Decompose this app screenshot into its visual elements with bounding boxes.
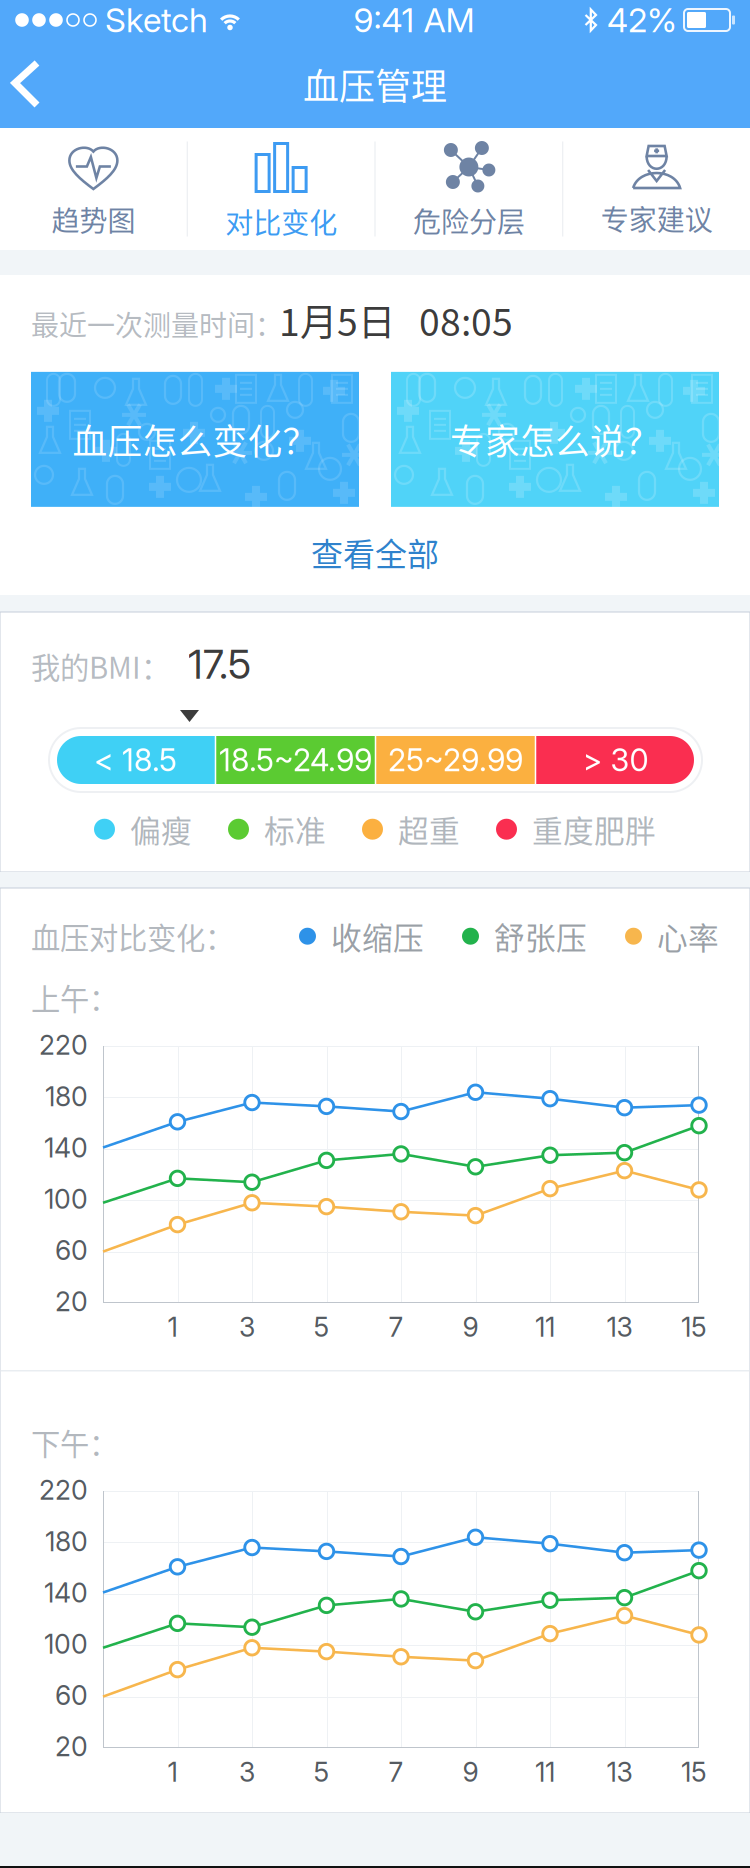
staticText: 60 <box>55 1679 88 1711</box>
staticText: 42% <box>607 0 677 40</box>
button[interactable]: 专家怎么说？ <box>391 372 719 507</box>
staticText: 专家建议 <box>601 198 713 238</box>
staticText: 20 <box>55 1285 88 1318</box>
staticText: 趋势图 <box>51 199 135 239</box>
staticText: < 18.5 <box>94 741 177 778</box>
staticText: 9:41 AM <box>353 0 474 40</box>
staticText: 100 <box>44 1183 88 1215</box>
staticText: 标准 <box>264 807 326 851</box>
staticText: Sketch <box>105 0 208 40</box>
staticText: 180 <box>45 1080 88 1113</box>
staticText: 心率 <box>657 914 719 958</box>
staticText: 下午： <box>31 1421 118 1463</box>
staticText: 危险分层 <box>413 200 525 240</box>
staticText: 重度肥胖 <box>532 807 656 851</box>
staticText: 上午： <box>31 976 118 1018</box>
staticText: 17.5 <box>188 640 251 688</box>
staticText: 3 <box>239 1311 255 1343</box>
staticText: 20 <box>55 1730 88 1763</box>
staticText: 7 <box>388 1756 403 1788</box>
staticText: 血压怎么变化？ <box>72 414 317 464</box>
staticText: 60 <box>55 1234 88 1266</box>
staticText: 13 <box>606 1311 632 1343</box>
staticText: 15 <box>681 1756 707 1788</box>
staticText: 25~29.99 <box>388 741 523 778</box>
button[interactable]: 危险分层 <box>375 128 562 250</box>
staticText: 140 <box>44 1132 88 1164</box>
staticText: 11 <box>535 1311 555 1343</box>
staticText: 100 <box>44 1628 88 1660</box>
button[interactable]: 对比变化 <box>188 128 375 250</box>
staticText: 5 <box>313 1756 329 1788</box>
staticText: > 30 <box>582 741 648 778</box>
staticText: 专家怎么说？ <box>450 414 660 464</box>
staticText: 舒张压 <box>494 914 587 958</box>
staticText: 5 <box>313 1311 329 1343</box>
staticText: 1月5日 08:05 <box>279 293 513 347</box>
button[interactable]: 专家建议 <box>563 128 750 250</box>
staticText: 15 <box>681 1311 707 1343</box>
staticText: 18.5~24.99 <box>219 741 372 778</box>
staticText: 偏瘦 <box>130 807 192 851</box>
staticText: 180 <box>45 1525 88 1558</box>
button[interactable]: 血压怎么变化？ <box>31 372 359 507</box>
staticText: 13 <box>606 1756 632 1788</box>
button[interactable]: 查看全部 <box>281 507 469 597</box>
staticText: 收缩压 <box>331 914 424 958</box>
staticText: 血压对比变化： <box>31 915 234 957</box>
staticText: 我的BMI： <box>31 645 170 687</box>
staticText: 查看全部 <box>311 529 439 575</box>
staticText: 血压管理 <box>303 58 447 110</box>
button[interactable]: 趋势图 <box>0 128 187 250</box>
staticText: 最近一次测量时间： <box>31 304 283 344</box>
staticText: 1 <box>167 1756 177 1788</box>
staticText: 220 <box>39 1029 88 1061</box>
staticText: 3 <box>239 1756 255 1788</box>
staticText: 9 <box>462 1311 478 1343</box>
staticText: 超重 <box>398 807 460 851</box>
staticText: 对比变化 <box>225 201 337 241</box>
staticText: 140 <box>44 1577 88 1609</box>
staticText: 7 <box>388 1311 403 1343</box>
button[interactable]: Back <box>0 40 82 128</box>
staticText: 1 <box>167 1311 177 1343</box>
staticText: 11 <box>535 1756 555 1788</box>
staticText: 9 <box>462 1756 478 1788</box>
staticText: 220 <box>39 1474 88 1506</box>
